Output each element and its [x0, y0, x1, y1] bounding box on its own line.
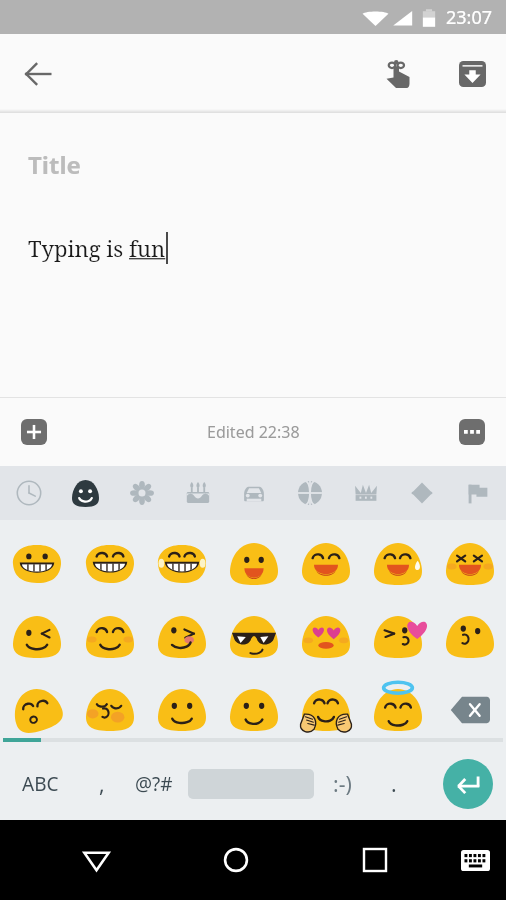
staticText: 23:07: [446, 5, 493, 30]
button[interactable]: Home: [166, 820, 305, 900]
button[interactable]: :-): [314, 748, 370, 820]
button[interactable]: KISS: [434, 600, 506, 673]
button[interactable]: .: [370, 748, 418, 820]
staticText: fun: [129, 233, 166, 263]
button[interactable]: JOY: [146, 527, 218, 600]
staticText: .: [391, 770, 397, 799]
button[interactable]: Travel: [226, 466, 282, 520]
button[interactable]: Activity: [282, 466, 338, 520]
staticText: :-): [333, 770, 352, 799]
button[interactable]: Add: [21, 419, 47, 445]
button[interactable]: OPEN: [218, 527, 290, 600]
button[interactable]: SUNGLASSES: [218, 600, 290, 673]
staticText: Title: [28, 148, 81, 181]
button[interactable]: RELAXED: [73, 600, 146, 673]
button[interactable]: Back: [11, 47, 65, 101]
button[interactable]: SLIGHT: [146, 673, 218, 746]
button[interactable]: Symbols: [394, 466, 450, 520]
button[interactable]: Hide keyboard: [26, 820, 166, 900]
button[interactable]: WINK: [0, 600, 73, 673]
button[interactable]: ,: [81, 748, 123, 820]
button[interactable]: KISS_HEART: [362, 600, 434, 673]
staticText: Edited 22:38: [207, 421, 300, 443]
button[interactable]: SWEAT: [362, 527, 434, 600]
button[interactable]: SMILE_EYES: [290, 527, 362, 600]
button[interactable]: Smileys: [57, 466, 114, 520]
button[interactable]: SLIGHT2: [218, 673, 290, 746]
button[interactable]: KISS_BLUSH: [73, 673, 146, 746]
button[interactable]: Recent: [0, 466, 57, 520]
button[interactable]: TONGUE: [146, 600, 218, 673]
button[interactable]: Objects: [338, 466, 394, 520]
button[interactable]: Nature: [114, 466, 170, 520]
staticText: Typing is: [28, 233, 129, 263]
button[interactable]: Switch keyboard: [444, 820, 506, 900]
button[interactable]: TILT_KISS: [0, 673, 73, 746]
staticText: @?#: [135, 771, 173, 797]
staticText: ,: [99, 770, 105, 799]
button[interactable]: @?#: [123, 748, 185, 820]
button[interactable]: GRIN: [0, 527, 73, 600]
button[interactable]: Backspace: [434, 673, 506, 746]
button[interactable]: Reminder: [372, 48, 424, 100]
button[interactable]: Recents: [305, 820, 444, 900]
button[interactable]: HEARTS: [290, 600, 362, 673]
button[interactable]: SQUINT: [434, 527, 506, 600]
button[interactable]: Flags: [450, 466, 506, 520]
staticText: ABC: [22, 771, 59, 797]
button[interactable]: HALO: [362, 673, 434, 746]
button[interactable]: HUG: [290, 673, 362, 746]
button[interactable]: ABC: [0, 748, 81, 820]
button[interactable]: Archive: [446, 48, 498, 100]
button[interactable]: Food: [170, 466, 226, 520]
button[interactable]: More options: [459, 419, 485, 445]
button[interactable]: BEAM: [73, 527, 146, 600]
button[interactable]: Enter: [443, 759, 493, 809]
